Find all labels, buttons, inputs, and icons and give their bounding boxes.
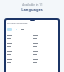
staticText: Choose language xyxy=(7,21,28,24)
staticText: Languages xyxy=(21,7,43,12)
button[interactable] xyxy=(33,51,57,55)
button[interactable] xyxy=(33,43,57,47)
button[interactable] xyxy=(33,59,57,63)
button[interactable] xyxy=(7,28,12,31)
staticText: Available in 11 xyxy=(22,3,43,7)
button[interactable] xyxy=(7,35,30,39)
button[interactable] xyxy=(33,35,57,39)
button[interactable] xyxy=(7,51,30,55)
button[interactable] xyxy=(7,43,30,47)
button[interactable] xyxy=(7,59,30,63)
